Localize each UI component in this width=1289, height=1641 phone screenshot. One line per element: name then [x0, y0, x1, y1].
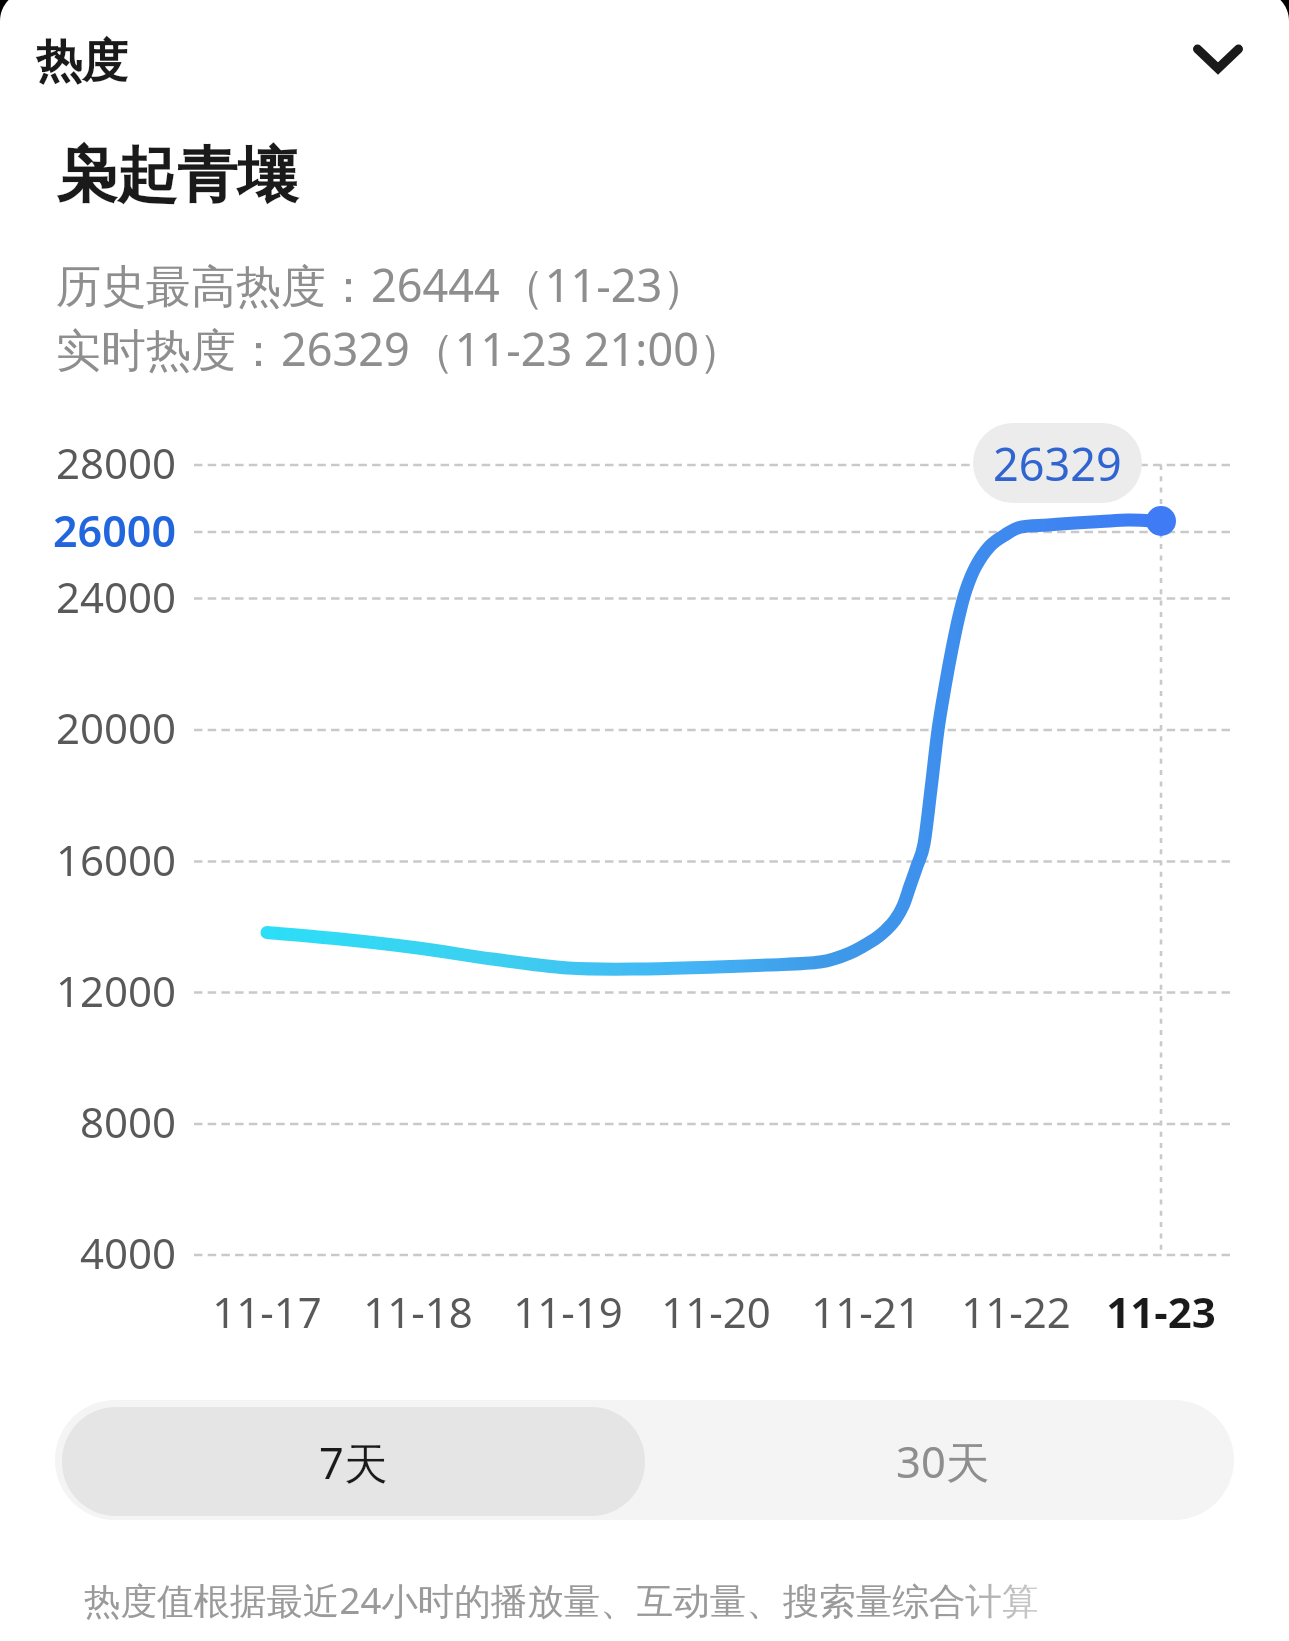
- staticText: 11-20: [616, 1283, 816, 1340]
- button[interactable]: Collapse: [1172, 12, 1264, 104]
- staticText: 热度: [36, 33, 128, 91]
- button[interactable]: 30天: [651, 1400, 1234, 1520]
- staticText: 实时热度：26329（11-23 21:00）: [56, 318, 744, 379]
- staticText: 26000: [36, 501, 176, 560]
- staticText: 历史最高热度：26444（11-23）: [56, 254, 708, 315]
- staticText: 24000: [36, 568, 176, 625]
- staticText: 热度值根据最近24小时的播放量、互动量、搜索量综合计算: [84, 1575, 1039, 1625]
- staticText: 11-22: [916, 1283, 1116, 1340]
- staticText: 11-19: [468, 1283, 668, 1340]
- staticText: 20000: [36, 699, 176, 756]
- staticText: 11-21: [766, 1283, 966, 1340]
- staticText: 12000: [36, 962, 176, 1019]
- staticText: 28000: [36, 434, 176, 491]
- staticText: 8000: [36, 1093, 176, 1150]
- button[interactable]: 7天: [62, 1407, 645, 1516]
- staticText: 30天: [896, 1431, 990, 1490]
- staticText: 7天: [319, 1432, 388, 1491]
- staticText: 26329: [993, 433, 1122, 494]
- staticText: 11-18: [318, 1283, 518, 1340]
- staticText: 11-23: [1061, 1283, 1261, 1340]
- staticText: 16000: [36, 831, 176, 888]
- staticText: 11-17: [167, 1283, 367, 1340]
- staticText: 4000: [36, 1224, 176, 1281]
- staticText: 枭起青壤: [56, 138, 298, 214]
